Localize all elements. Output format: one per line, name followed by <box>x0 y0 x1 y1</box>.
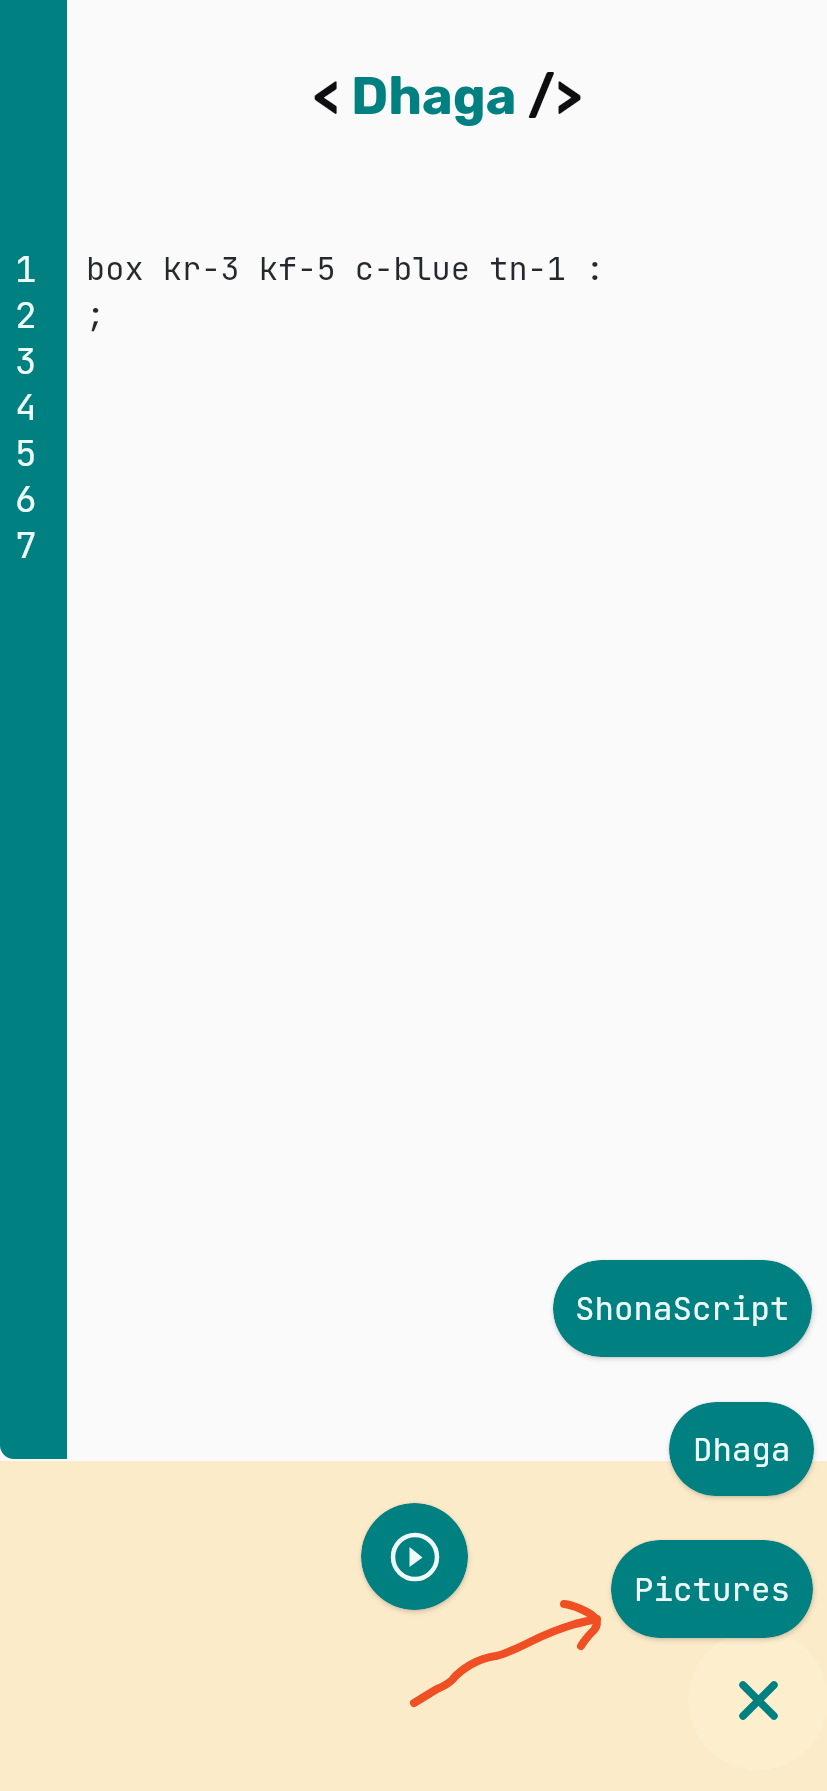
button[interactable]: ShonaScript <box>553 1260 812 1357</box>
staticText: box kr-3 kf-5 c-blue tn-1 : <box>86 247 605 289</box>
staticText: 7 <box>15 521 37 567</box>
staticText: Pictures <box>634 1568 791 1611</box>
staticText: 5 <box>15 429 37 475</box>
staticText: Dhaga <box>693 1428 791 1471</box>
staticText: < Dhaga /> <box>313 65 582 127</box>
button[interactable]: Pictures <box>611 1540 813 1638</box>
staticText: 6 <box>15 475 37 521</box>
staticText: ; <box>86 293 106 335</box>
button[interactable]: Dhaga <box>669 1402 814 1496</box>
staticText: 2 <box>15 291 37 337</box>
staticText: 3 <box>15 337 37 383</box>
button[interactable]: Run code <box>361 1503 468 1610</box>
button[interactable]: Close menu <box>688 1630 827 1770</box>
staticText: 4 <box>15 383 37 429</box>
staticText: ShonaScript <box>575 1287 790 1330</box>
staticText: 1 <box>15 245 37 291</box>
